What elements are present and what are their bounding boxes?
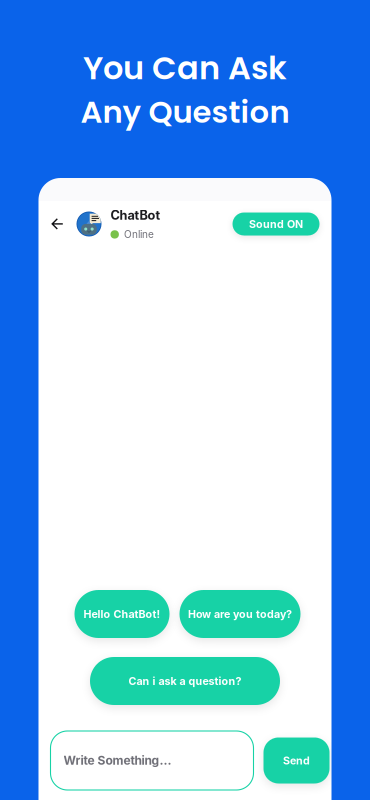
button[interactable]: Back (51, 209, 76, 239)
staticText: Can i ask a question? (128, 674, 241, 687)
staticText: Sound ON (249, 217, 303, 230)
button[interactable]: How are you today? (179, 590, 300, 638)
button[interactable]: Write Something... (50, 731, 253, 790)
staticText: Send (283, 754, 310, 767)
button[interactable]: Sound ON (232, 212, 319, 235)
staticText: Online (124, 228, 154, 240)
staticText: Hello ChatBot! (83, 607, 160, 620)
button[interactable]: Hello ChatBot! (74, 590, 169, 638)
staticText: ChatBot (110, 207, 160, 223)
staticText: Write Something... (63, 753, 171, 768)
button[interactable]: Send (263, 737, 329, 783)
button[interactable]: Can i ask a question? (90, 657, 280, 705)
staticText: How are you today? (188, 607, 292, 620)
staticText: Any Question (80, 90, 289, 133)
staticText: You Can Ask (83, 46, 287, 90)
